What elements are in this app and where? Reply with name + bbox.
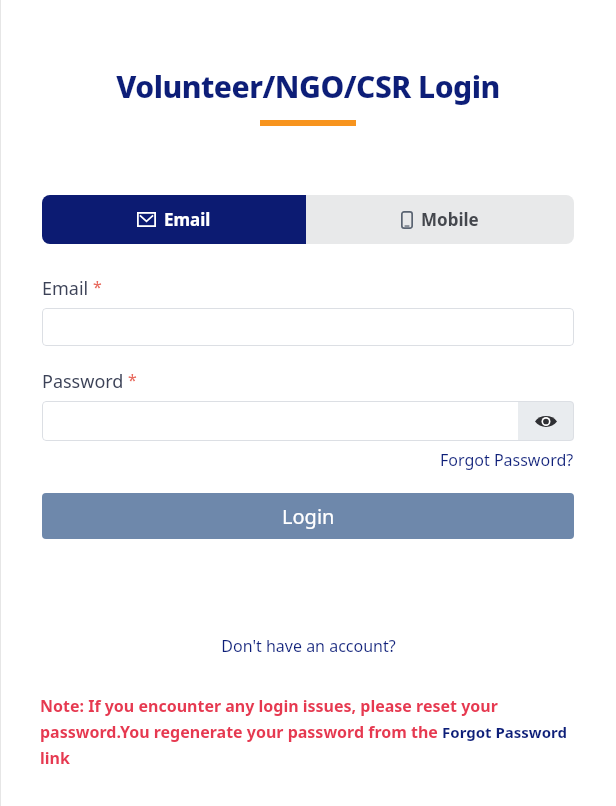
staticText: Email <box>164 208 211 231</box>
staticText: * <box>128 369 137 391</box>
button[interactable]: Don't have an account? <box>221 635 396 657</box>
button[interactable] <box>42 401 518 441</box>
button[interactable] <box>42 308 574 346</box>
staticText: Mobile <box>421 208 479 231</box>
button[interactable]: Show password <box>518 401 574 441</box>
staticText: Forgot Password? <box>440 449 574 471</box>
button[interactable]: Login <box>42 493 574 539</box>
staticText: Don't have an account? <box>221 635 396 657</box>
staticText: Login <box>282 503 335 530</box>
staticText: Password <box>42 369 124 394</box>
button[interactable]: Email <box>42 195 306 244</box>
staticText: Volunteer/NGO/CSR Login <box>0 66 616 107</box>
staticText: * <box>93 276 102 298</box>
button[interactable]: Forgot Password? <box>440 449 574 471</box>
button[interactable]: Mobile <box>306 195 574 244</box>
staticText: Email <box>42 276 89 301</box>
staticText: Note: If you encounter any login issues,… <box>40 695 580 769</box>
